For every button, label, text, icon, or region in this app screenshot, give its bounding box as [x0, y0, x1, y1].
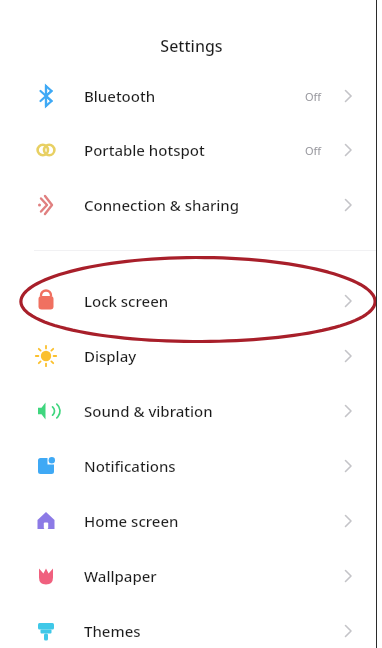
staticText: Lock screen	[84, 291, 169, 311]
staticText: Portable hotspot	[84, 140, 205, 160]
button[interactable]: Sound & vibration	[0, 384, 376, 438]
staticText: Sound & vibration	[84, 401, 213, 421]
staticText: Off	[305, 143, 322, 158]
staticText: Settings	[160, 35, 223, 57]
button[interactable]: Themes	[0, 604, 376, 648]
staticText: Notifications	[84, 456, 176, 476]
button[interactable]: Lock screen	[0, 274, 376, 328]
staticText: Wallpaper	[84, 566, 157, 586]
button[interactable]: Notifications	[0, 439, 376, 493]
staticText: Connection & sharing	[84, 195, 240, 215]
staticText: Themes	[84, 621, 141, 641]
staticText: Display	[84, 346, 137, 366]
button[interactable]: Portable hotspot	[0, 123, 376, 177]
staticText: Home screen	[84, 511, 179, 531]
button[interactable]: Display	[0, 329, 376, 383]
staticText: Off	[305, 89, 322, 104]
button[interactable]: Home screen	[0, 494, 376, 548]
button[interactable]: Wallpaper	[0, 549, 376, 603]
button[interactable]: Connection & sharing	[0, 178, 376, 232]
staticText: Bluetooth	[84, 86, 156, 106]
button[interactable]: Bluetooth	[0, 69, 376, 123]
